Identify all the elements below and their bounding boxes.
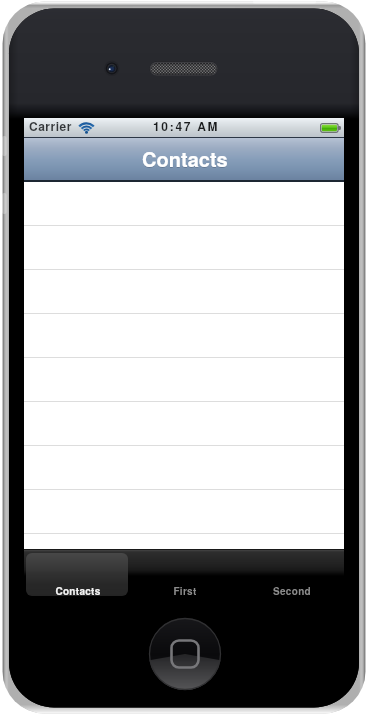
button[interactable] bbox=[24, 446, 344, 490]
button[interactable] bbox=[24, 182, 344, 226]
button[interactable]: Second bbox=[239, 553, 342, 596]
staticText: Carrier bbox=[29, 117, 72, 134]
staticText: Contacts bbox=[55, 584, 101, 596]
button[interactable] bbox=[24, 402, 344, 446]
button[interactable] bbox=[24, 490, 344, 534]
button[interactable] bbox=[24, 314, 344, 358]
staticText: Contacts bbox=[142, 145, 228, 174]
staticText: First bbox=[173, 584, 197, 596]
staticText: Contacts bbox=[142, 144, 228, 173]
staticText: Second bbox=[273, 584, 311, 596]
button[interactable]: First bbox=[132, 553, 235, 596]
staticText: 10:47 AM bbox=[153, 117, 220, 134]
button[interactable] bbox=[24, 226, 344, 270]
button[interactable] bbox=[24, 358, 344, 402]
button[interactable]: Contacts bbox=[26, 553, 128, 596]
button[interactable] bbox=[24, 270, 344, 314]
